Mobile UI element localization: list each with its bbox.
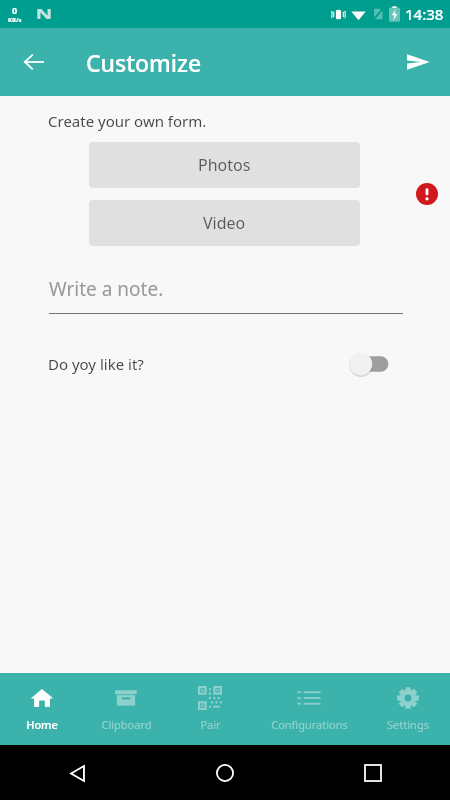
staticText: Clipboard bbox=[101, 717, 152, 732]
staticText: Home bbox=[26, 717, 58, 732]
button[interactable]: Error bbox=[410, 177, 444, 211]
staticText: Write a note. bbox=[49, 276, 164, 302]
button[interactable]: Back bbox=[10, 38, 58, 86]
staticText: 0 bbox=[12, 4, 18, 16]
button[interactable]: Pair bbox=[168, 673, 252, 745]
staticText: Do yoy like it? bbox=[48, 354, 144, 374]
button[interactable]: Send bbox=[394, 38, 442, 86]
staticText: Settings bbox=[387, 717, 429, 732]
staticText: KB/s bbox=[8, 16, 22, 24]
staticText: Create your own form. bbox=[48, 111, 207, 131]
button[interactable]: Back bbox=[60, 756, 94, 790]
button[interactable]: Settings bbox=[366, 673, 450, 745]
staticText: Configurations bbox=[271, 717, 348, 732]
button[interactable]: Video bbox=[89, 200, 360, 246]
button[interactable]: Write a note. bbox=[49, 276, 403, 314]
staticText: Pair bbox=[200, 717, 221, 732]
button[interactable]: Home bbox=[0, 673, 84, 745]
button[interactable]: Home bbox=[208, 756, 242, 790]
button[interactable]: Configurations bbox=[252, 673, 366, 745]
button[interactable]: Recent apps bbox=[356, 756, 390, 790]
button[interactable]: Clipboard bbox=[84, 673, 168, 745]
staticText: 14:38 bbox=[405, 4, 444, 24]
staticText: Video bbox=[203, 212, 246, 234]
staticText: Customize bbox=[86, 47, 202, 78]
button[interactable]: Do yoy like it? bbox=[0, 344, 450, 384]
staticText: Photos bbox=[198, 154, 251, 176]
button[interactable]: Photos bbox=[89, 142, 360, 188]
